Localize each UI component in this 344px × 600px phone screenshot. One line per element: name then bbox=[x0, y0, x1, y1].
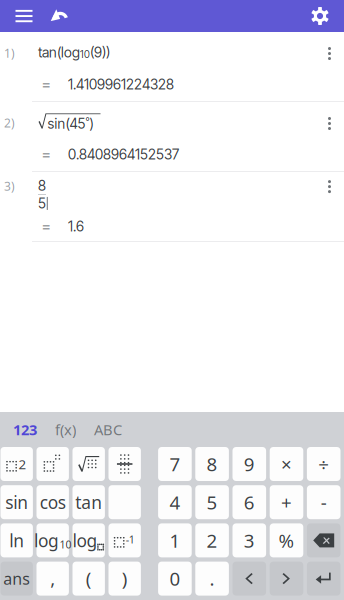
staticText: ( bbox=[86, 566, 92, 591]
staticText: % bbox=[278, 528, 294, 553]
staticText: 1 bbox=[169, 528, 180, 553]
staticText: 4 bbox=[169, 490, 180, 515]
button[interactable]: ln bbox=[0, 523, 33, 557]
button[interactable] bbox=[36, 447, 69, 481]
button[interactable]: % bbox=[270, 523, 303, 557]
button[interactable]: + bbox=[270, 485, 303, 519]
staticText: cos bbox=[40, 491, 66, 514]
staticText: sin bbox=[5, 491, 28, 514]
staticText: f(x) bbox=[55, 420, 76, 439]
button[interactable]: 2) bbox=[0, 102, 344, 138]
button[interactable]: log bbox=[36, 523, 69, 557]
button[interactable]: × bbox=[270, 447, 303, 481]
button[interactable]: sin bbox=[0, 485, 33, 519]
staticText: = bbox=[42, 75, 50, 94]
staticText: ) bbox=[89, 115, 93, 132]
button[interactable]: tan bbox=[72, 485, 105, 519]
staticText: (9)) bbox=[90, 44, 110, 61]
button[interactable]: 4 bbox=[158, 485, 192, 519]
button[interactable]: -1 bbox=[108, 523, 141, 557]
staticText: , bbox=[50, 566, 55, 591]
staticText: 6 bbox=[244, 490, 255, 515]
button[interactable] bbox=[108, 447, 141, 481]
button[interactable]: 9 bbox=[232, 447, 266, 481]
button[interactable]: , bbox=[36, 562, 69, 596]
staticText: = bbox=[42, 217, 50, 236]
staticText: 0.8408964152537 bbox=[68, 146, 179, 163]
staticText: . bbox=[210, 566, 215, 591]
staticText: tan bbox=[75, 491, 102, 514]
staticText: 1.4109961224328 bbox=[68, 76, 174, 93]
staticText: 7 bbox=[169, 452, 180, 476]
button[interactable]: f(x) bbox=[46, 416, 85, 443]
button[interactable]: 6 bbox=[232, 485, 266, 519]
button[interactable]: log bbox=[72, 523, 105, 557]
button[interactable]: Menu bbox=[7, 0, 41, 32]
staticText: 8 bbox=[207, 452, 218, 476]
button[interactable]: 0 bbox=[158, 562, 192, 596]
button[interactable]: cos bbox=[36, 485, 69, 519]
staticText: tan(log bbox=[38, 44, 80, 61]
staticText: 5 bbox=[38, 195, 46, 212]
button[interactable]: ( bbox=[72, 562, 105, 596]
staticText: 1) bbox=[4, 45, 15, 61]
staticText: 3) bbox=[4, 178, 15, 194]
staticText: 5 bbox=[207, 490, 218, 515]
button[interactable]: ABC bbox=[85, 416, 131, 443]
staticText: × bbox=[281, 452, 292, 476]
button[interactable]: ÷ bbox=[307, 447, 340, 481]
button[interactable] bbox=[307, 523, 340, 557]
staticText: ÷ bbox=[318, 452, 329, 476]
button[interactable]: 2 bbox=[195, 523, 229, 557]
staticText: 9 bbox=[244, 452, 255, 476]
button[interactable] bbox=[307, 562, 340, 596]
staticText: 0 bbox=[169, 566, 180, 591]
button[interactable]: 2 bbox=[0, 447, 33, 481]
staticText: 2 bbox=[18, 455, 26, 473]
staticText: ) bbox=[122, 566, 128, 591]
staticText: log bbox=[34, 529, 59, 552]
staticText: 10 bbox=[80, 48, 90, 60]
button[interactable] bbox=[232, 562, 266, 596]
staticText: 1.6 bbox=[68, 218, 84, 235]
button[interactable]: 1) bbox=[0, 32, 344, 68]
staticText: = bbox=[42, 145, 50, 164]
button[interactable]: - bbox=[307, 485, 340, 519]
button[interactable]: 8 bbox=[195, 447, 229, 481]
button[interactable]: 1 bbox=[158, 523, 192, 557]
staticText: ans bbox=[3, 568, 30, 589]
button[interactable]: . bbox=[195, 562, 229, 596]
staticText: -1 bbox=[126, 532, 135, 546]
staticText: 123 bbox=[13, 420, 37, 439]
staticText: ln bbox=[9, 529, 24, 552]
button[interactable]: 7 bbox=[158, 447, 192, 481]
button[interactable]: 3 bbox=[232, 523, 266, 557]
staticText: 8 bbox=[38, 177, 46, 194]
staticText: 2 bbox=[207, 528, 218, 553]
staticText: + bbox=[281, 490, 292, 515]
staticText: 3 bbox=[244, 528, 255, 553]
button[interactable]: 123 bbox=[4, 416, 46, 443]
button[interactable]: Undo bbox=[41, 0, 79, 32]
staticText: 10 bbox=[59, 537, 71, 551]
button[interactable]: 3) bbox=[0, 172, 344, 212]
staticText: log bbox=[72, 529, 97, 552]
button[interactable]: 5 bbox=[195, 485, 229, 519]
button[interactable] bbox=[108, 485, 141, 519]
staticText: ° bbox=[85, 115, 89, 127]
staticText: - bbox=[321, 490, 327, 515]
button[interactable]: ans bbox=[0, 562, 33, 596]
button[interactable]: ) bbox=[108, 562, 141, 596]
button[interactable]: Settings bbox=[303, 0, 337, 32]
staticText: ABC bbox=[94, 420, 122, 439]
button[interactable] bbox=[72, 447, 105, 481]
button[interactable] bbox=[270, 562, 303, 596]
staticText: 2) bbox=[4, 115, 15, 131]
staticText: sin(45 bbox=[47, 115, 85, 132]
